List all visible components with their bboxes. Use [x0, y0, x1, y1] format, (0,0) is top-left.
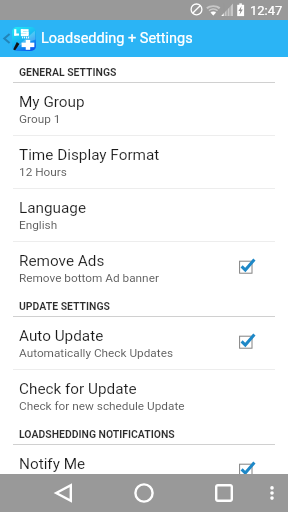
- button[interactable]: Notify Me: [0, 445, 288, 474]
- staticText: My Group: [19, 93, 85, 111]
- button[interactable]: Language: [0, 189, 288, 242]
- staticText: Language: [19, 199, 87, 217]
- staticText: Loadsedding + Settings: [41, 30, 193, 47]
- button[interactable]: Toggle: [235, 255, 261, 281]
- button[interactable]: Back: [39, 478, 87, 508]
- staticText: 12:47: [250, 3, 283, 18]
- button[interactable]: Remove Ads: [0, 242, 288, 294]
- staticText: UPDATE SETTINGS: [19, 300, 110, 312]
- staticText: Check for Update: [19, 380, 137, 398]
- button[interactable]: Time Display Format: [0, 136, 288, 189]
- button[interactable]: Check for Update: [0, 370, 288, 422]
- staticText: English: [19, 218, 58, 232]
- staticText: 12 Hours: [19, 165, 67, 179]
- button[interactable]: More options: [256, 479, 288, 507]
- staticText: Remove bottom Ad banner: [19, 271, 159, 285]
- staticText: Notify Me: [19, 455, 86, 473]
- staticText: Remove Ads: [19, 252, 105, 270]
- staticText: Check for new schedule Update: [19, 399, 185, 413]
- staticText: Time Display Format: [19, 146, 160, 164]
- staticText: Automatically Check Updates: [19, 346, 173, 360]
- button[interactable]: Home: [120, 478, 168, 508]
- button[interactable]: Auto Update: [0, 317, 288, 370]
- staticText: LOADSHEDDING NOTIFICATIONS: [19, 428, 175, 440]
- button[interactable]: Recent apps: [200, 478, 248, 508]
- staticText: GENERAL SETTINGS: [19, 66, 117, 78]
- button[interactable]: Navigate up: [0, 20, 12, 57]
- staticText: Auto Update: [19, 327, 104, 345]
- button[interactable]: Toggle: [235, 330, 261, 356]
- button[interactable]: My Group: [0, 83, 288, 136]
- button[interactable]: Toggle: [235, 458, 261, 474]
- staticText: Group 1: [19, 112, 61, 126]
